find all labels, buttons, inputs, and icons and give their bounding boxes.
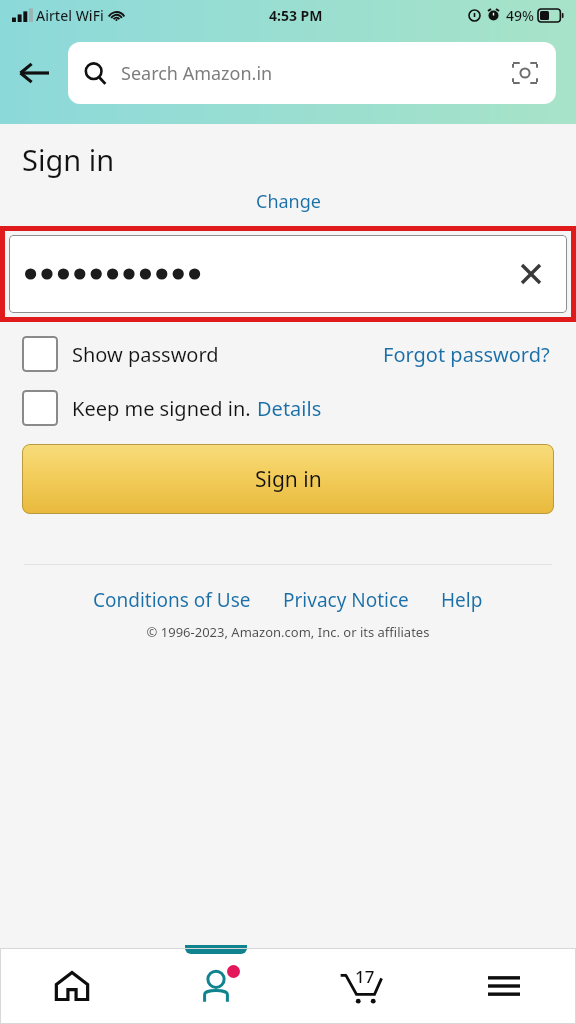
button[interactable]: Sign in <box>22 444 554 514</box>
button[interactable]: Cart, 17 items <box>288 948 432 1024</box>
button[interactable]: Clear password <box>9 235 567 313</box>
button[interactable]: Privacy Notice <box>279 587 413 613</box>
button[interactable]: Show password <box>22 336 219 372</box>
staticText: Forgot password? <box>383 341 550 368</box>
button[interactable]: Search Amazon.in <box>68 42 556 104</box>
staticText: Airtel WiFi <box>36 6 104 25</box>
staticText: © 1996-2023, Amazon.com, Inc. or its aff… <box>0 623 576 641</box>
button[interactable]: Change <box>248 187 329 216</box>
staticText: Details <box>257 395 322 422</box>
staticText: Search Amazon.in <box>121 61 273 86</box>
staticText: Keep me signed in. <box>72 395 251 422</box>
staticText: Change <box>256 189 321 214</box>
staticText: Sign in <box>255 465 322 494</box>
button[interactable]: Back <box>0 42 68 104</box>
button[interactable]: Menu <box>432 948 576 1024</box>
button[interactable]: Help <box>437 587 487 613</box>
button[interactable]: Details <box>257 395 322 422</box>
button[interactable]: Home <box>0 948 144 1024</box>
button[interactable]: Keep me signed in. <box>22 390 251 426</box>
staticText: Show password <box>72 341 219 368</box>
staticText: Conditions of Use <box>93 587 251 613</box>
staticText: 49% <box>506 6 534 25</box>
staticText: Help <box>441 587 483 613</box>
button[interactable]: Conditions of Use <box>89 587 255 613</box>
button[interactable]: Scan with camera <box>510 58 540 88</box>
staticText: 4:53 PM <box>269 6 323 25</box>
staticText: Privacy Notice <box>283 587 409 613</box>
staticText: 17 <box>355 965 375 988</box>
button[interactable]: Clear password <box>511 254 551 294</box>
staticText: Sign in <box>22 140 115 179</box>
button[interactable]: Forgot password? <box>379 337 554 372</box>
button[interactable]: Your account <box>144 948 288 1024</box>
